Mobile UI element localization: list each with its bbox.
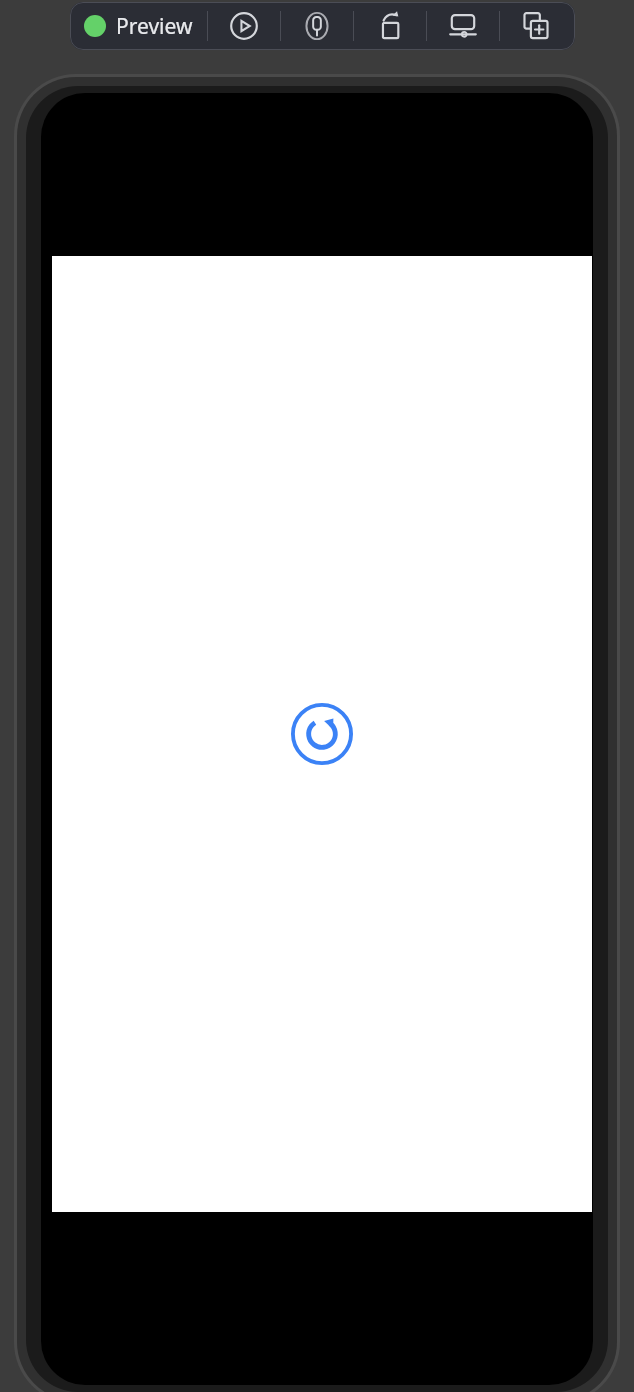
button[interactable]: Preview xyxy=(70,2,207,50)
button[interactable]: UI check mode xyxy=(281,2,353,50)
button[interactable]: Retry xyxy=(286,698,358,770)
button[interactable]: Device settings xyxy=(427,2,499,50)
staticText: Preview xyxy=(116,12,193,41)
button[interactable]: Run preview xyxy=(208,2,280,50)
button[interactable]: Add preview xyxy=(500,2,572,50)
button[interactable]: Rotate preview xyxy=(354,2,426,50)
